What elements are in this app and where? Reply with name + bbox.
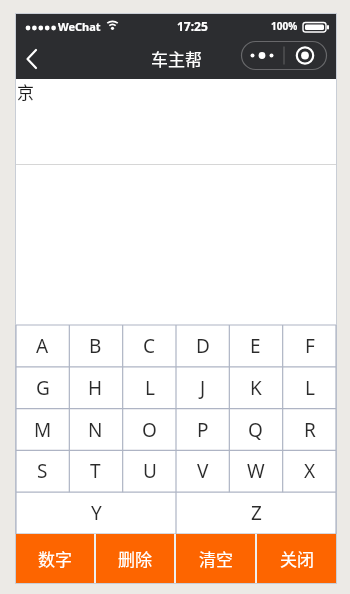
- button[interactable]: L: [283, 367, 336, 409]
- button[interactable]: M: [16, 409, 69, 451]
- staticText: 数字: [38, 546, 72, 571]
- button[interactable]: U: [123, 450, 176, 492]
- button[interactable]: Q: [229, 409, 282, 451]
- staticText: Q: [248, 417, 263, 443]
- staticText: J: [200, 375, 206, 401]
- staticText: U: [143, 458, 157, 484]
- button[interactable]: O: [123, 409, 176, 451]
- button[interactable]: 京: [16, 79, 336, 164]
- button[interactable]: F: [283, 325, 336, 367]
- button[interactable]: C: [123, 325, 176, 367]
- button[interactable]: A: [16, 325, 69, 367]
- staticText: 关闭: [280, 546, 314, 571]
- button[interactable]: E: [229, 325, 282, 367]
- button[interactable]: T: [69, 450, 122, 492]
- staticText: S: [37, 458, 48, 484]
- button[interactable]: Y: [16, 492, 176, 534]
- staticText: Y: [91, 500, 102, 526]
- staticText: B: [89, 333, 102, 359]
- staticText: P: [197, 417, 209, 443]
- button[interactable]: J: [176, 367, 229, 409]
- staticText: L: [305, 375, 315, 401]
- button[interactable]: N: [69, 409, 122, 451]
- staticText: R: [304, 417, 316, 443]
- button[interactable]: 数字: [16, 534, 94, 583]
- staticText: V: [197, 458, 209, 484]
- staticText: C: [143, 333, 156, 359]
- staticText: D: [196, 333, 210, 359]
- staticText: K: [250, 375, 262, 401]
- staticText: F: [305, 333, 315, 359]
- staticText: Z: [251, 500, 262, 526]
- staticText: X: [304, 458, 316, 484]
- staticText: A: [36, 333, 49, 359]
- button[interactable]: 关闭: [257, 534, 336, 583]
- button[interactable]: 清空: [176, 534, 255, 583]
- button[interactable]: B: [69, 325, 122, 367]
- staticText: T: [90, 458, 101, 484]
- staticText: O: [142, 417, 157, 443]
- staticText: 17:25: [177, 18, 208, 34]
- button[interactable]: [16, 44, 46, 74]
- staticText: M: [34, 417, 52, 443]
- button[interactable]: Z: [176, 492, 336, 534]
- staticText: 车主帮: [151, 46, 202, 71]
- staticText: E: [250, 333, 261, 359]
- button[interactable]: R: [283, 409, 336, 451]
- staticText: L: [145, 375, 155, 401]
- button[interactable]: D: [176, 325, 229, 367]
- button[interactable]: S: [16, 450, 69, 492]
- button[interactable]: L: [123, 367, 176, 409]
- button[interactable]: W: [229, 450, 282, 492]
- staticText: WeChat: [58, 19, 101, 34]
- staticText: H: [88, 375, 103, 401]
- button[interactable]: [241, 41, 327, 70]
- button[interactable]: P: [176, 409, 229, 451]
- button[interactable]: 删除: [96, 534, 174, 583]
- staticText: G: [36, 375, 50, 401]
- staticText: 100%: [271, 19, 298, 33]
- button[interactable]: V: [176, 450, 229, 492]
- staticText: W: [247, 458, 265, 484]
- staticText: N: [88, 417, 103, 443]
- button[interactable]: K: [229, 367, 282, 409]
- button[interactable]: G: [16, 367, 69, 409]
- staticText: 删除: [118, 546, 152, 571]
- staticText: 清空: [199, 546, 233, 571]
- button[interactable]: X: [283, 450, 336, 492]
- button[interactable]: H: [69, 367, 122, 409]
- staticText: 京: [17, 79, 34, 104]
